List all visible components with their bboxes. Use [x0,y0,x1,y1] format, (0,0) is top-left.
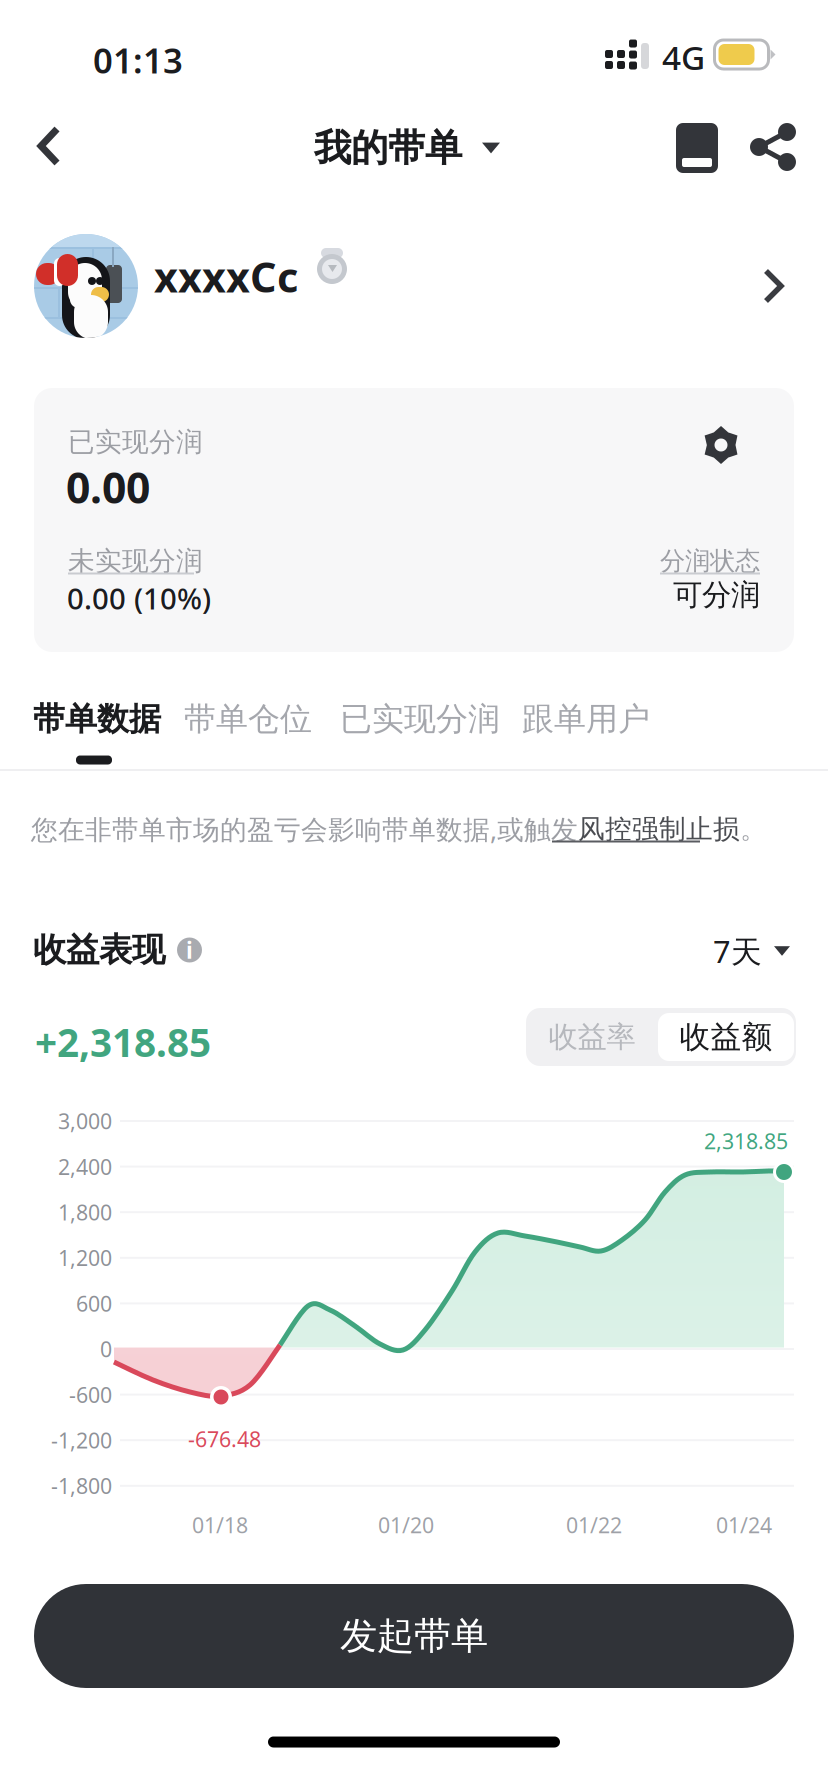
staticText: -676.48 [188,1425,261,1453]
staticText: 您在非带单市场的盈亏会影响带单数据,或触发 [31,811,578,847]
staticText: 带单数据 [33,699,161,739]
staticText: 01:13 [93,37,183,83]
staticText: 未实现分润 [68,545,203,577]
staticText: 收益表现 [33,929,165,970]
staticText: -600 [69,1380,112,1409]
button[interactable]: 已实现分润 [340,699,500,739]
button[interactable]: 发起带单 [34,1584,794,1688]
staticText: 01/18 [192,1511,248,1539]
staticText: 1,800 [58,1198,112,1226]
staticText: 0 [100,1335,112,1363]
staticText: 。 [740,813,767,845]
button[interactable]: 我的带单 [314,120,500,176]
staticText: 收益额 [679,1018,772,1056]
staticText: 2,400 [58,1152,112,1181]
staticText: +2,318.85 [35,1016,211,1068]
staticText: 01/24 [716,1511,772,1539]
button[interactable]: Back [28,124,72,170]
button[interactable]: Notes [675,122,719,174]
staticText: 分润状态 [660,545,760,576]
staticText: 已实现分润 [340,699,500,739]
staticText: 7天 [713,931,762,971]
staticText: -1,800 [51,1472,112,1500]
staticText: 收益率 [548,1019,635,1055]
staticText: 2,318.85 [704,1127,788,1155]
button[interactable]: xxxxCc [0,228,828,346]
button[interactable]: 收益额 [658,1013,794,1061]
staticText: 1,200 [58,1244,112,1272]
button[interactable]: Share [748,120,798,174]
staticText: -1,200 [51,1426,112,1454]
button[interactable]: Settings [702,426,740,464]
staticText: 01/22 [566,1511,622,1539]
staticText: 4G [662,35,705,79]
button[interactable]: 跟单用户 [522,699,650,739]
staticText: 0.00 [66,459,150,515]
staticText: 可分润 [673,577,760,613]
staticText: 带单仓位 [184,699,312,739]
staticText: 风控强制止损 [578,813,740,845]
staticText: 我的带单 [314,125,462,171]
staticText: xxxxCc [154,249,298,304]
staticText: 已实现分润 [68,426,203,458]
staticText: 跟单用户 [522,699,650,739]
staticText: 01/20 [378,1511,434,1539]
staticText: i [186,935,193,965]
staticText: 600 [76,1289,112,1317]
button[interactable]: 带单仓位 [184,699,312,739]
staticText: 发起带单 [340,1613,488,1659]
button[interactable]: 带单数据 [33,699,161,739]
staticText: 0.00 (10%) [67,578,211,617]
button[interactable]: 7天 [713,931,790,971]
staticText: 3,000 [58,1107,112,1135]
button[interactable]: 收益率 [526,1008,658,1066]
